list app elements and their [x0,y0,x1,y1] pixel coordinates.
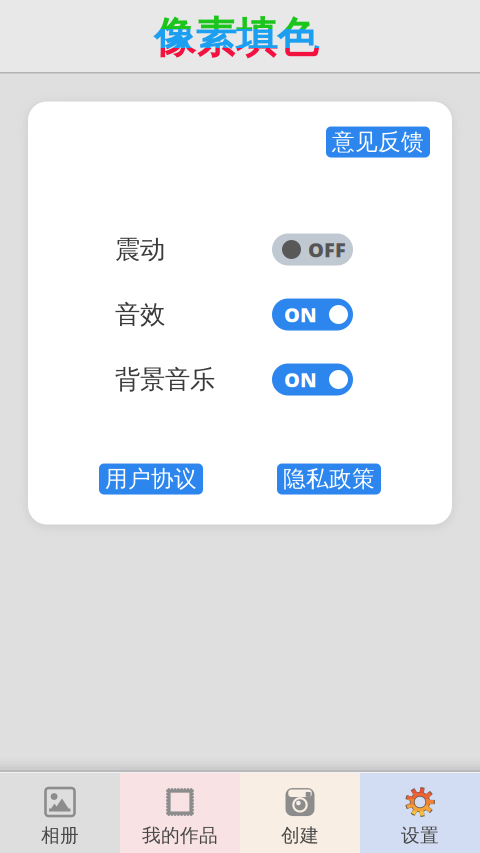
button[interactable]: On [272,363,353,395]
staticText: 我的作品 [142,824,218,847]
button[interactable]: 隐私政策 [277,463,381,494]
button[interactable]: 用户协议 [99,463,203,494]
staticText: 震动 [115,234,165,265]
staticText: 用户协议 [105,465,197,493]
staticText: 创建 [281,824,319,847]
button[interactable]: Off [272,233,353,265]
staticText: 隐私政策 [283,465,375,493]
staticText: ON [284,301,317,328]
button[interactable]: 创建 [240,773,360,853]
staticText: ON [284,366,317,393]
button[interactable]: 意见反馈 [326,126,430,157]
button[interactable]: 我的作品 [120,773,240,853]
staticText: 设置 [401,824,439,847]
staticText: 意见反馈 [332,128,424,156]
staticText: 音效 [115,299,165,330]
staticText: 相册 [41,824,79,847]
button[interactable]: 相册 [0,773,120,853]
staticText: 背景音乐 [115,364,215,395]
button[interactable]: 设置 [360,773,480,853]
button[interactable]: On [272,298,353,330]
staticText: OFF [308,236,346,263]
